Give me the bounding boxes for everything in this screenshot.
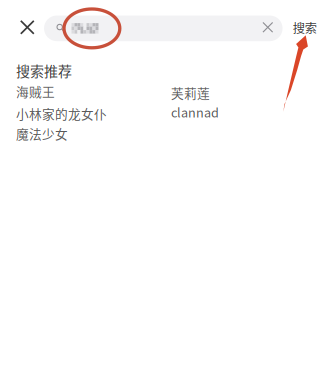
button[interactable] [44,15,283,41]
staticText: 魔法少女 [16,124,68,143]
button[interactable]: Clear search text [256,15,280,39]
button[interactable]: clannad [171,104,223,120]
staticText: 海贼王 [16,82,55,100]
staticText: 搜索推荐 [16,60,72,81]
staticText: 芙莉莲 [171,84,210,102]
staticText: 小林家的龙女仆 [16,104,107,122]
button[interactable]: 小林家的龙女仆 [16,105,112,121]
staticText: clannad [171,103,219,121]
button[interactable]: 搜索 [285,10,325,46]
button[interactable]: 芙莉莲 [171,85,217,101]
button[interactable]: 魔法少女 [16,125,76,141]
staticText: 搜索 [293,19,317,36]
button[interactable]: 海贼王 [16,83,62,99]
button[interactable]: Close [7,7,47,47]
